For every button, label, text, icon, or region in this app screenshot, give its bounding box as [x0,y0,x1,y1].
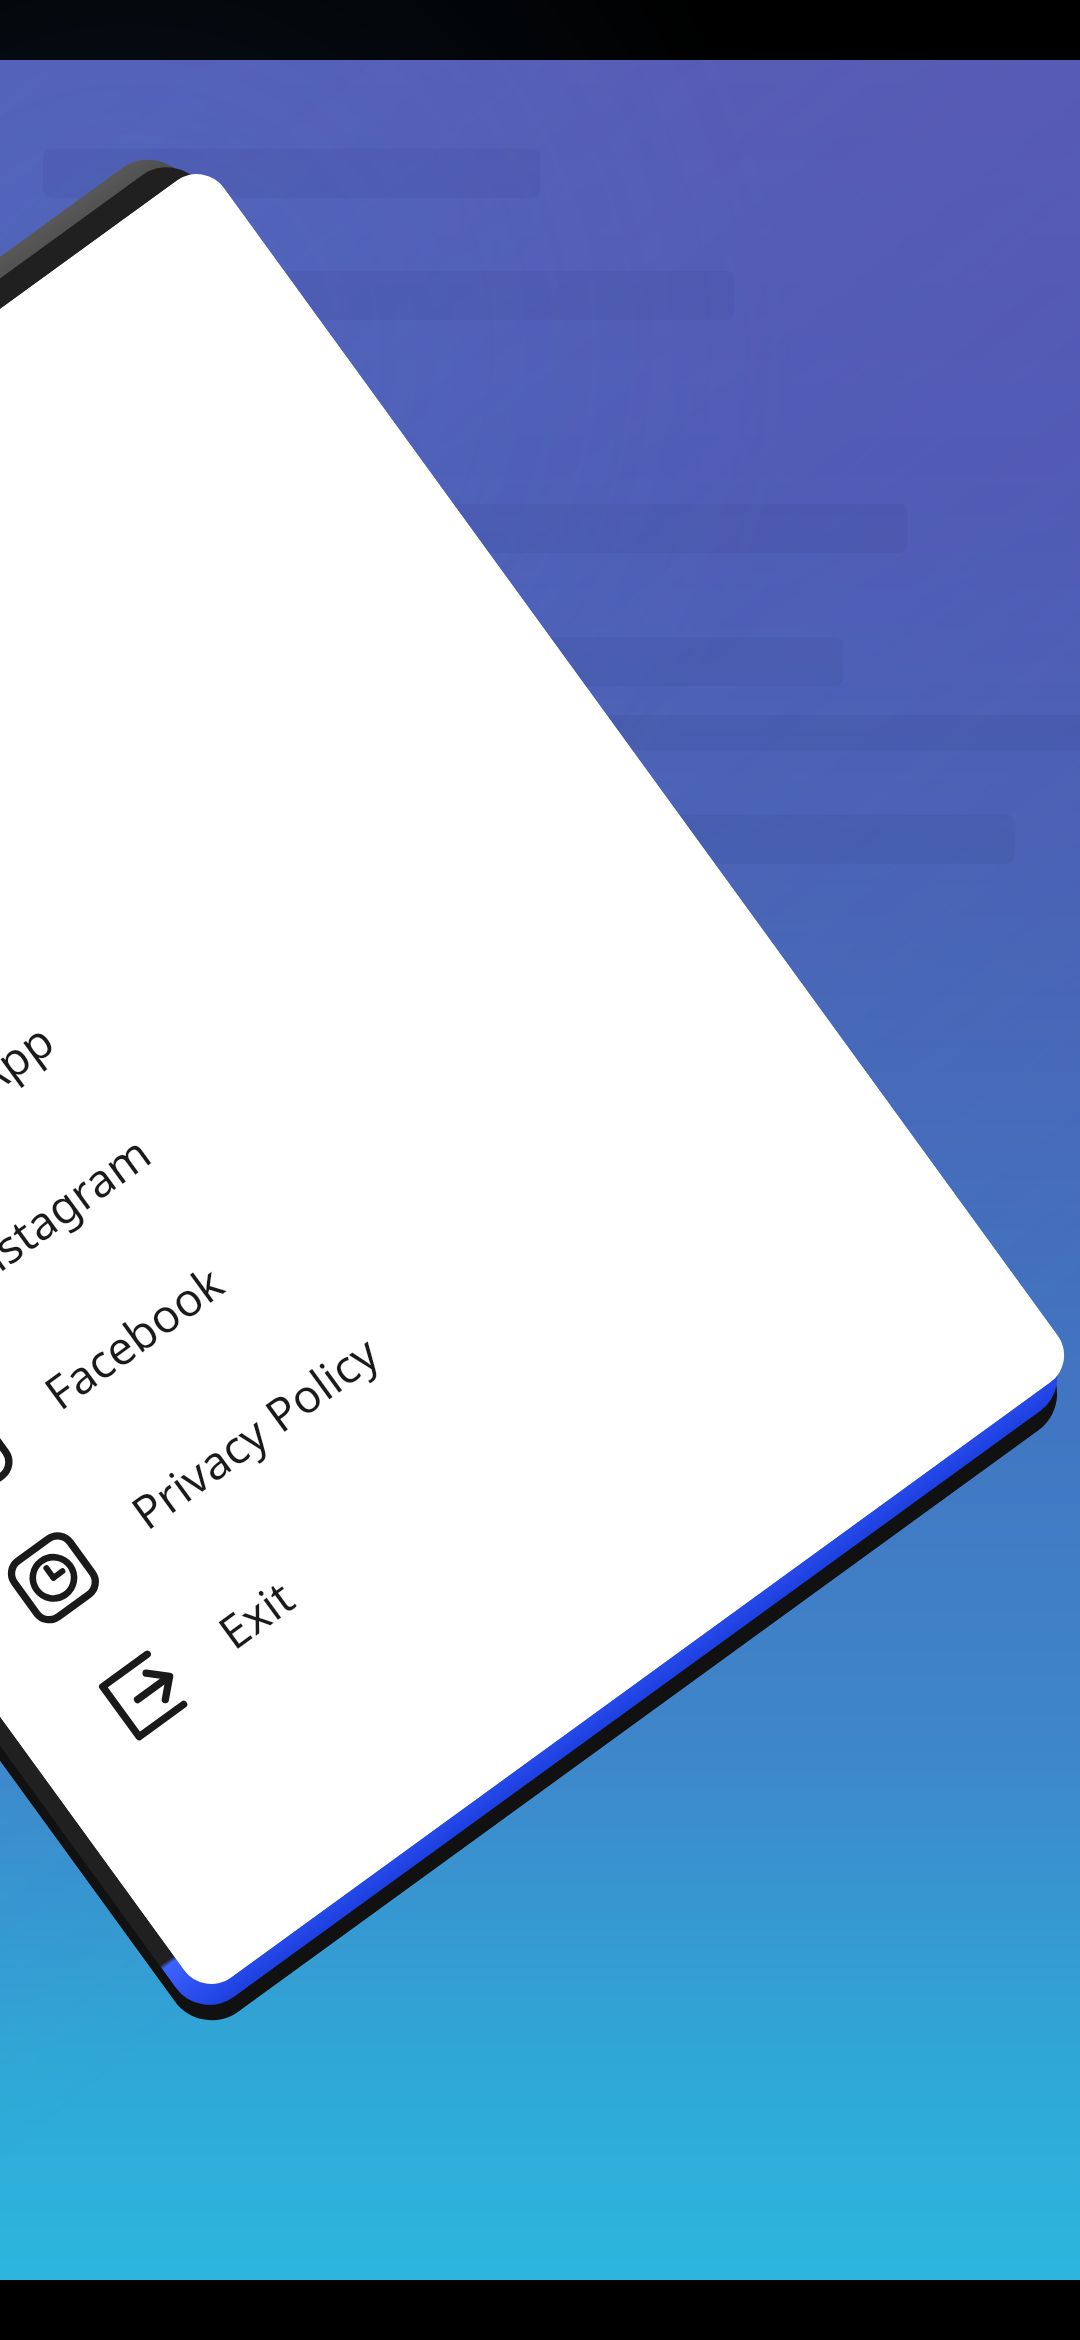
button[interactable]: More App [0,742,409,1308]
button[interactable]: Rate Us [0,622,322,1189]
button[interactable]: Instagram [0,862,496,1428]
staticText: More App [0,1008,66,1184]
button[interactable]: Exit [56,1221,757,1787]
button[interactable]: Share [0,502,235,1069]
staticText: Facebook [31,1251,236,1423]
staticText: Exit [205,1565,306,1663]
staticText: Privacy Policy [118,1321,391,1543]
button[interactable]: Privacy Policy [0,1101,670,1668]
staticText: Instagram [0,1121,163,1304]
button[interactable]: Facebook [0,981,583,1548]
